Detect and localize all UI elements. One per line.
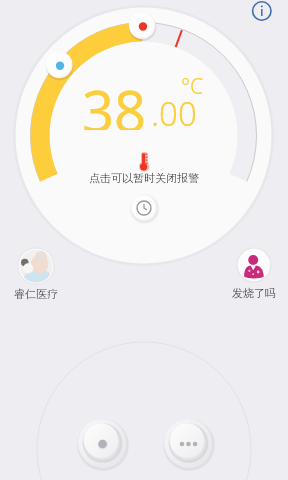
button[interactable]: 38 [80,72,205,130]
staticText: .00 [151,91,197,136]
staticText: 点击可以暂时关闭报警 [89,171,199,185]
button[interactable]: Measure [76,417,128,469]
button[interactable]: More [162,417,214,469]
button[interactable]: 发烧了吗 [225,247,283,301]
staticText: 38 [82,72,147,130]
staticText: °C [181,72,204,101]
button[interactable]: History [129,193,159,223]
button[interactable]: 点击可以暂时关闭报警 [58,148,230,188]
button[interactable]: Info [248,0,276,28]
button[interactable]: 睿仁医疗 [7,248,65,302]
staticText: 发烧了吗 [232,286,276,300]
staticText: 睿仁医疗 [14,287,58,301]
